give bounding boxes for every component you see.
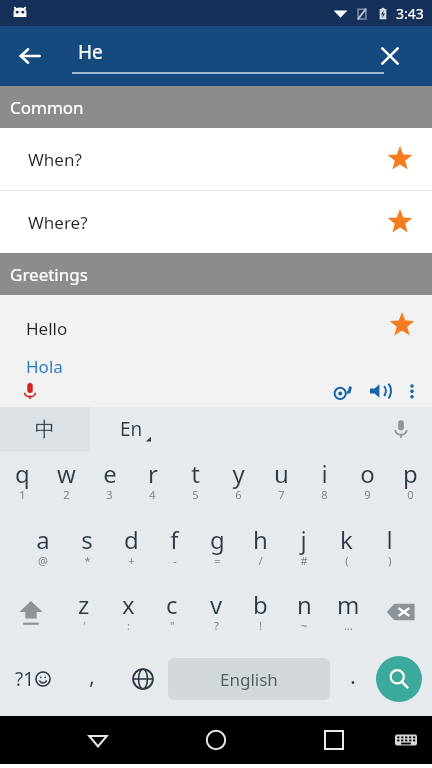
staticText: 6 — [235, 487, 242, 502]
button[interactable]: Favorite — [380, 139, 420, 179]
staticText: / — [258, 553, 263, 568]
button[interactable]: , — [66, 647, 118, 711]
staticText: z — [78, 588, 90, 621]
staticText: v — [210, 588, 223, 621]
button[interactable]: Switch keyboard — [388, 722, 424, 758]
staticText: n — [297, 588, 312, 621]
button[interactable]: i — [303, 451, 346, 517]
button[interactable]: Backspace — [370, 583, 432, 647]
button[interactable]: x — [106, 583, 150, 647]
staticText: He — [78, 39, 103, 65]
button[interactable]: More options — [398, 377, 426, 405]
staticText: y — [232, 457, 245, 490]
staticText: r — [148, 457, 158, 490]
button[interactable]: En — [90, 407, 180, 451]
button[interactable]: Back — [76, 718, 120, 762]
staticText: p — [403, 457, 418, 490]
button[interactable]: w — [44, 451, 88, 517]
button[interactable]: k — [325, 517, 368, 583]
staticText: ! — [259, 618, 262, 633]
staticText: @ — [38, 553, 48, 568]
staticText: d — [124, 523, 139, 556]
staticText: Hello — [26, 317, 68, 340]
staticText: 7 — [278, 487, 285, 502]
button[interactable]: v — [194, 583, 238, 647]
button[interactable]: z — [62, 583, 106, 647]
button[interactable]: Chinese input — [0, 407, 90, 451]
staticText: 3 — [106, 487, 113, 502]
staticText: s — [81, 523, 93, 556]
staticText: 中 — [35, 417, 55, 442]
button[interactable]: Symbols and emoji — [0, 647, 66, 711]
staticText: # — [300, 553, 308, 568]
staticText: English — [220, 668, 278, 691]
button[interactable]: Clear — [366, 32, 414, 80]
staticText: When? — [28, 148, 82, 171]
staticText: * — [84, 553, 91, 568]
staticText: m — [337, 588, 360, 621]
button[interactable]: Back — [6, 32, 54, 80]
button[interactable]: Hello — [0, 295, 432, 407]
staticText: 9 — [364, 487, 371, 502]
staticText: l — [386, 523, 393, 556]
button[interactable]: Search — [376, 656, 422, 702]
button[interactable]: Record — [16, 377, 44, 405]
staticText: 2 — [63, 487, 70, 502]
button[interactable]: p — [389, 451, 432, 517]
button[interactable]: Recents — [312, 718, 356, 762]
button[interactable]: y — [217, 451, 260, 517]
button[interactable]: g — [196, 517, 239, 583]
button[interactable]: e — [88, 451, 131, 517]
staticText: 4 — [149, 487, 156, 502]
button[interactable]: m — [326, 583, 370, 647]
button[interactable]: h — [239, 517, 282, 583]
staticText: o — [360, 457, 375, 490]
button[interactable]: u — [260, 451, 303, 517]
button[interactable]: t — [174, 451, 217, 517]
staticText: " — [170, 618, 175, 633]
staticText: : — [127, 618, 130, 633]
staticText: b — [253, 588, 268, 621]
button[interactable]: Home — [194, 718, 238, 762]
button[interactable]: a — [21, 517, 65, 583]
staticText: , — [89, 660, 95, 690]
staticText: 1 — [19, 487, 26, 502]
button[interactable]: . — [330, 647, 376, 711]
button[interactable]: j — [282, 517, 325, 583]
button[interactable]: English — [168, 658, 330, 700]
button[interactable]: l — [368, 517, 411, 583]
staticText: … — [344, 618, 353, 633]
staticText: g — [210, 523, 225, 556]
staticText: 3:43 — [396, 4, 424, 23]
button[interactable]: b — [238, 583, 282, 647]
button[interactable]: d — [109, 517, 153, 583]
button[interactable]: Shift — [0, 583, 62, 647]
button[interactable]: n — [282, 583, 326, 647]
button[interactable]: r — [131, 451, 174, 517]
staticText: Greetings — [10, 263, 88, 286]
staticText: 5 — [192, 487, 199, 502]
button[interactable]: Change language — [118, 647, 168, 711]
button[interactable]: When? — [0, 128, 432, 190]
staticText: ( — [345, 553, 349, 568]
button[interactable]: o — [346, 451, 389, 517]
staticText: - — [173, 553, 177, 568]
button[interactable]: Favorite — [380, 202, 420, 242]
staticText: . — [350, 660, 356, 690]
staticText: En — [120, 416, 143, 442]
button[interactable]: Favorite — [384, 307, 420, 343]
staticText: u — [274, 457, 289, 490]
button[interactable]: Play audio — [364, 376, 394, 406]
staticText: e — [103, 457, 117, 490]
staticText: ?1 — [15, 666, 35, 692]
staticText: i — [321, 457, 328, 490]
button[interactable]: c — [150, 583, 194, 647]
button[interactable]: q — [0, 451, 44, 517]
button[interactable]: Where? — [0, 191, 432, 253]
button[interactable]: Play slowly — [328, 376, 358, 406]
button[interactable]: f — [153, 517, 196, 583]
staticText: ? — [214, 618, 219, 633]
button[interactable]: s — [65, 517, 109, 583]
button[interactable]: Voice input — [384, 412, 418, 446]
staticText: x — [122, 588, 135, 621]
